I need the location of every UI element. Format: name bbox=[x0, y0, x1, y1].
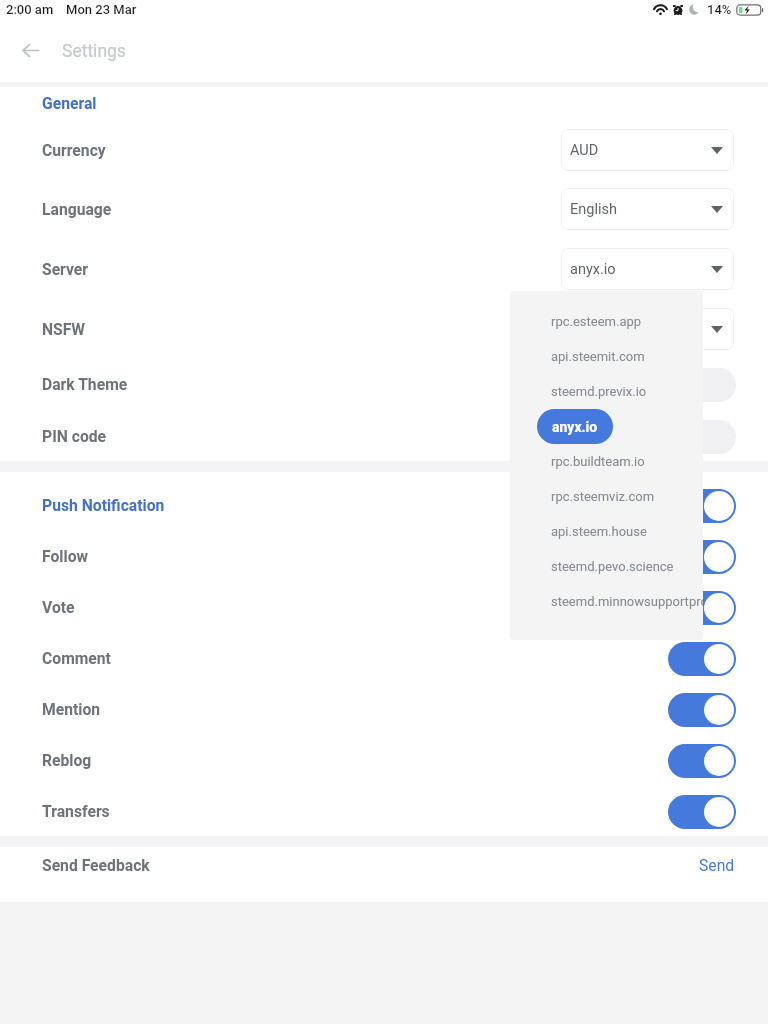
staticText: 2:00 am bbox=[6, 2, 54, 17]
button[interactable]: rpc.esteem.app bbox=[510, 304, 703, 339]
button[interactable]: PIN code bbox=[0, 411, 768, 461]
button[interactable]: api.steemit.com bbox=[510, 339, 703, 374]
staticText: Language bbox=[42, 200, 112, 218]
button[interactable]: Comment bbox=[0, 633, 768, 683]
staticText: Dark Theme bbox=[42, 375, 128, 393]
staticText: Follow bbox=[42, 547, 89, 565]
button[interactable]: rpc.steemviz.com bbox=[510, 479, 703, 514]
staticText: Send bbox=[699, 856, 735, 874]
staticText: English bbox=[570, 201, 617, 218]
staticText: anyx.io bbox=[570, 261, 616, 278]
button[interactable]: Reblog bbox=[0, 735, 768, 785]
button[interactable]: steemd.previx.io bbox=[510, 374, 703, 409]
staticText: api.steem.house bbox=[551, 524, 647, 539]
staticText: Reblog bbox=[42, 751, 92, 769]
staticText: steemd.minnowsupportproject.org bbox=[551, 594, 703, 609]
button[interactable]: Follow bbox=[0, 531, 768, 581]
button[interactable]: Vote bbox=[0, 582, 768, 632]
staticText: api.steemit.com bbox=[551, 349, 645, 364]
button[interactable]: Toggle bbox=[668, 420, 736, 454]
button[interactable]: steemd.minnowsupportproject.org bbox=[510, 584, 703, 619]
button[interactable]: Currency bbox=[0, 125, 768, 175]
button[interactable]: Toggle bbox=[668, 795, 736, 829]
staticText: Comment bbox=[42, 649, 111, 667]
staticText: Always bbox=[570, 321, 617, 338]
button[interactable]: NSFW bbox=[0, 304, 768, 354]
button[interactable]: Toggle bbox=[668, 744, 736, 778]
staticText: AUD bbox=[570, 142, 599, 159]
button[interactable]: Toggle bbox=[668, 540, 736, 574]
button[interactable]: Toggle bbox=[668, 489, 736, 523]
staticText: rpc.steemviz.com bbox=[551, 489, 655, 504]
button[interactable]: Toggle bbox=[668, 591, 736, 625]
staticText: Server bbox=[42, 260, 89, 278]
button[interactable]: Server bbox=[0, 244, 768, 294]
staticText: rpc.buildteam.io bbox=[551, 454, 645, 469]
button[interactable]: AUD bbox=[561, 129, 734, 171]
staticText: steemd.previx.io bbox=[551, 384, 647, 399]
button[interactable]: Back bbox=[10, 30, 51, 71]
staticText: Mon 23 Mar bbox=[66, 2, 137, 17]
staticText: Push Notification bbox=[42, 496, 165, 514]
button[interactable]: English bbox=[561, 188, 734, 230]
button[interactable]: rpc.buildteam.io bbox=[510, 444, 703, 479]
staticText: Transfers bbox=[42, 802, 110, 820]
staticText: Currency bbox=[42, 141, 106, 159]
staticText: Settings bbox=[62, 41, 126, 62]
button[interactable]: api.steem.house bbox=[510, 514, 703, 549]
button[interactable]: anyx.io bbox=[537, 409, 613, 444]
staticText: General bbox=[42, 94, 97, 112]
button[interactable]: Always bbox=[561, 308, 734, 350]
button[interactable]: Transfers bbox=[0, 786, 768, 836]
staticText: Send Feedback bbox=[42, 856, 150, 874]
button[interactable]: anyx.io bbox=[561, 248, 734, 290]
staticText: NSFW bbox=[42, 320, 86, 338]
staticText: anyx.io bbox=[552, 419, 598, 435]
button[interactable]: Send Feedback bbox=[0, 840, 768, 890]
staticText: 14% bbox=[707, 2, 732, 17]
staticText: PIN code bbox=[42, 427, 107, 445]
button[interactable]: Toggle bbox=[668, 642, 736, 676]
staticText: Mention bbox=[42, 700, 101, 718]
button[interactable]: Dark Theme bbox=[0, 359, 768, 409]
staticText: steemd.pevo.science bbox=[551, 559, 674, 574]
button[interactable]: Language bbox=[0, 184, 768, 234]
staticText: Vote bbox=[42, 598, 75, 616]
staticText: rpc.esteem.app bbox=[551, 314, 642, 329]
button[interactable]: steemd.pevo.science bbox=[510, 549, 703, 584]
button[interactable]: Mention bbox=[0, 684, 768, 734]
button[interactable]: Toggle bbox=[668, 693, 736, 727]
button[interactable]: Toggle bbox=[668, 368, 736, 402]
